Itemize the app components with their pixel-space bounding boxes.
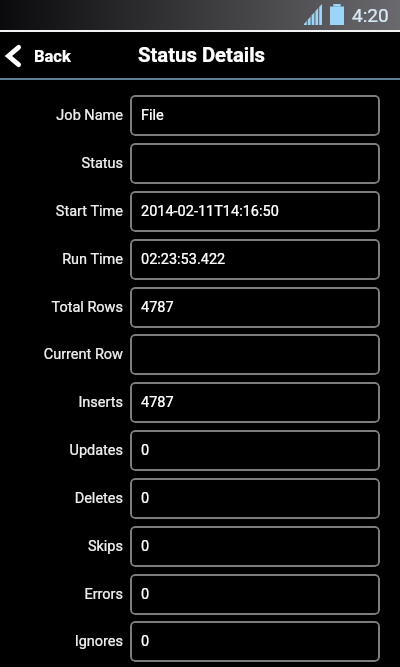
button[interactable]: 0 xyxy=(130,478,380,519)
staticText: 2014-02-11T14:16:50 xyxy=(141,203,279,220)
staticText: 4:20 xyxy=(352,4,389,26)
staticText: 0 xyxy=(141,586,150,603)
staticText: Start Time xyxy=(0,203,123,220)
staticText: Ignores xyxy=(0,633,123,650)
staticText: Status xyxy=(0,155,123,172)
other: Back xyxy=(6,45,21,67)
button[interactable]: 0 xyxy=(130,574,380,615)
button[interactable]: File xyxy=(130,95,380,136)
button[interactable] xyxy=(130,334,380,375)
staticText: Skips xyxy=(0,538,123,555)
staticText: 0 xyxy=(141,490,150,507)
staticText: File xyxy=(141,107,164,124)
button[interactable] xyxy=(130,143,380,184)
button[interactable]: Back xyxy=(0,39,83,73)
staticText: 0 xyxy=(141,442,150,459)
button[interactable]: 4787 xyxy=(130,382,380,423)
staticText: Run Time xyxy=(0,251,123,268)
staticText: 02:23:53.422 xyxy=(141,251,226,268)
button[interactable]: 0 xyxy=(130,430,380,471)
staticText: Inserts xyxy=(0,394,123,411)
staticText: 0 xyxy=(141,633,150,650)
staticText: Errors xyxy=(0,586,123,603)
staticText: Back xyxy=(34,47,71,66)
staticText: Updates xyxy=(0,442,123,459)
staticText: Deletes xyxy=(0,490,123,507)
button[interactable]: 0 xyxy=(130,526,380,567)
staticText: Status Details xyxy=(138,43,265,67)
staticText: 4787 xyxy=(141,299,174,316)
button[interactable]: 02:23:53.422 xyxy=(130,239,380,280)
staticText: Current Row xyxy=(0,346,123,363)
staticText: 0 xyxy=(141,538,150,555)
staticText: Total Rows xyxy=(0,299,123,316)
button[interactable]: 2014-02-11T14:16:50 xyxy=(130,191,380,232)
button[interactable]: 0 xyxy=(130,621,380,662)
staticText: 4787 xyxy=(141,394,174,411)
button[interactable]: 4787 xyxy=(130,287,380,328)
staticText: Job Name xyxy=(0,107,123,124)
